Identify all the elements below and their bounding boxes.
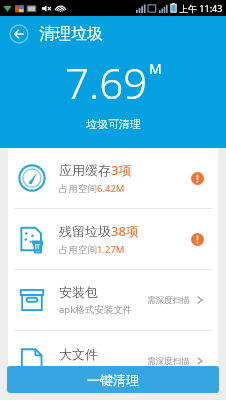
button[interactable]: 安装包 (8, 270, 218, 330)
staticText: 7.69 (65, 54, 148, 111)
button[interactable]: 一键清理 (7, 366, 219, 393)
staticText: apk格式安装文件 (59, 303, 133, 316)
staticText: 大文件 (59, 346, 98, 362)
staticText: M (149, 59, 162, 78)
button[interactable]: 大文件 (8, 331, 218, 391)
button[interactable]: 残留垃圾38项 (8, 209, 218, 269)
staticText: 残留垃圾38项 (59, 222, 139, 240)
staticText: 安装包 (59, 284, 98, 300)
staticText: 应用缓存3项 (59, 161, 132, 179)
staticText: 占用空间1.27M (59, 243, 125, 256)
staticText: 垃圾可清理 (86, 117, 141, 131)
staticText: 上午 11:43 (179, 2, 223, 14)
staticText: 需深度扫描 (147, 356, 190, 367)
staticText: 需深度扫描 (147, 295, 190, 306)
staticText: 占用空间6.42M (59, 182, 125, 195)
staticText: 一键清理 (87, 372, 139, 388)
staticText: 清理垃圾 (39, 24, 103, 44)
button[interactable]: 应用缓存3项 (8, 148, 218, 208)
button[interactable]: Back (8, 23, 30, 45)
staticText: 占用空间 (59, 365, 97, 377)
